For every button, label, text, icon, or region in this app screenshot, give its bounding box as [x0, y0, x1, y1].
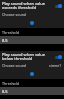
button[interactable]: Play sound: [30, 21, 34, 25]
staticText: Play sound when value exceeds threshold: [2, 1, 54, 10]
staticText: Choose sound: [2, 12, 62, 17]
button[interactable]: 8.5: [2, 36, 62, 44]
button[interactable]: Toggle: [54, 3, 62, 9]
button[interactable]: 8.5: [2, 87, 62, 95]
button[interactable]: Choose sound: [2, 62, 62, 69]
staticText: sirene1: [49, 63, 62, 68]
button[interactable]: Choose sound: [2, 11, 62, 18]
staticText: Threshold: [2, 30, 19, 35]
staticText: 8.5: [2, 89, 8, 94]
button[interactable]: Play sound when value below threshold: [2, 51, 62, 62]
staticText: Threshold: [2, 81, 19, 86]
button[interactable]: Play sound when value exceeds threshold: [2, 0, 62, 11]
staticText: Choose sound: [2, 63, 49, 68]
staticText: 8.5: [2, 38, 8, 43]
staticText: Play sound when value below threshold: [2, 52, 54, 61]
button[interactable]: Toggle: [54, 54, 62, 60]
button[interactable]: Play sound: [30, 72, 34, 76]
